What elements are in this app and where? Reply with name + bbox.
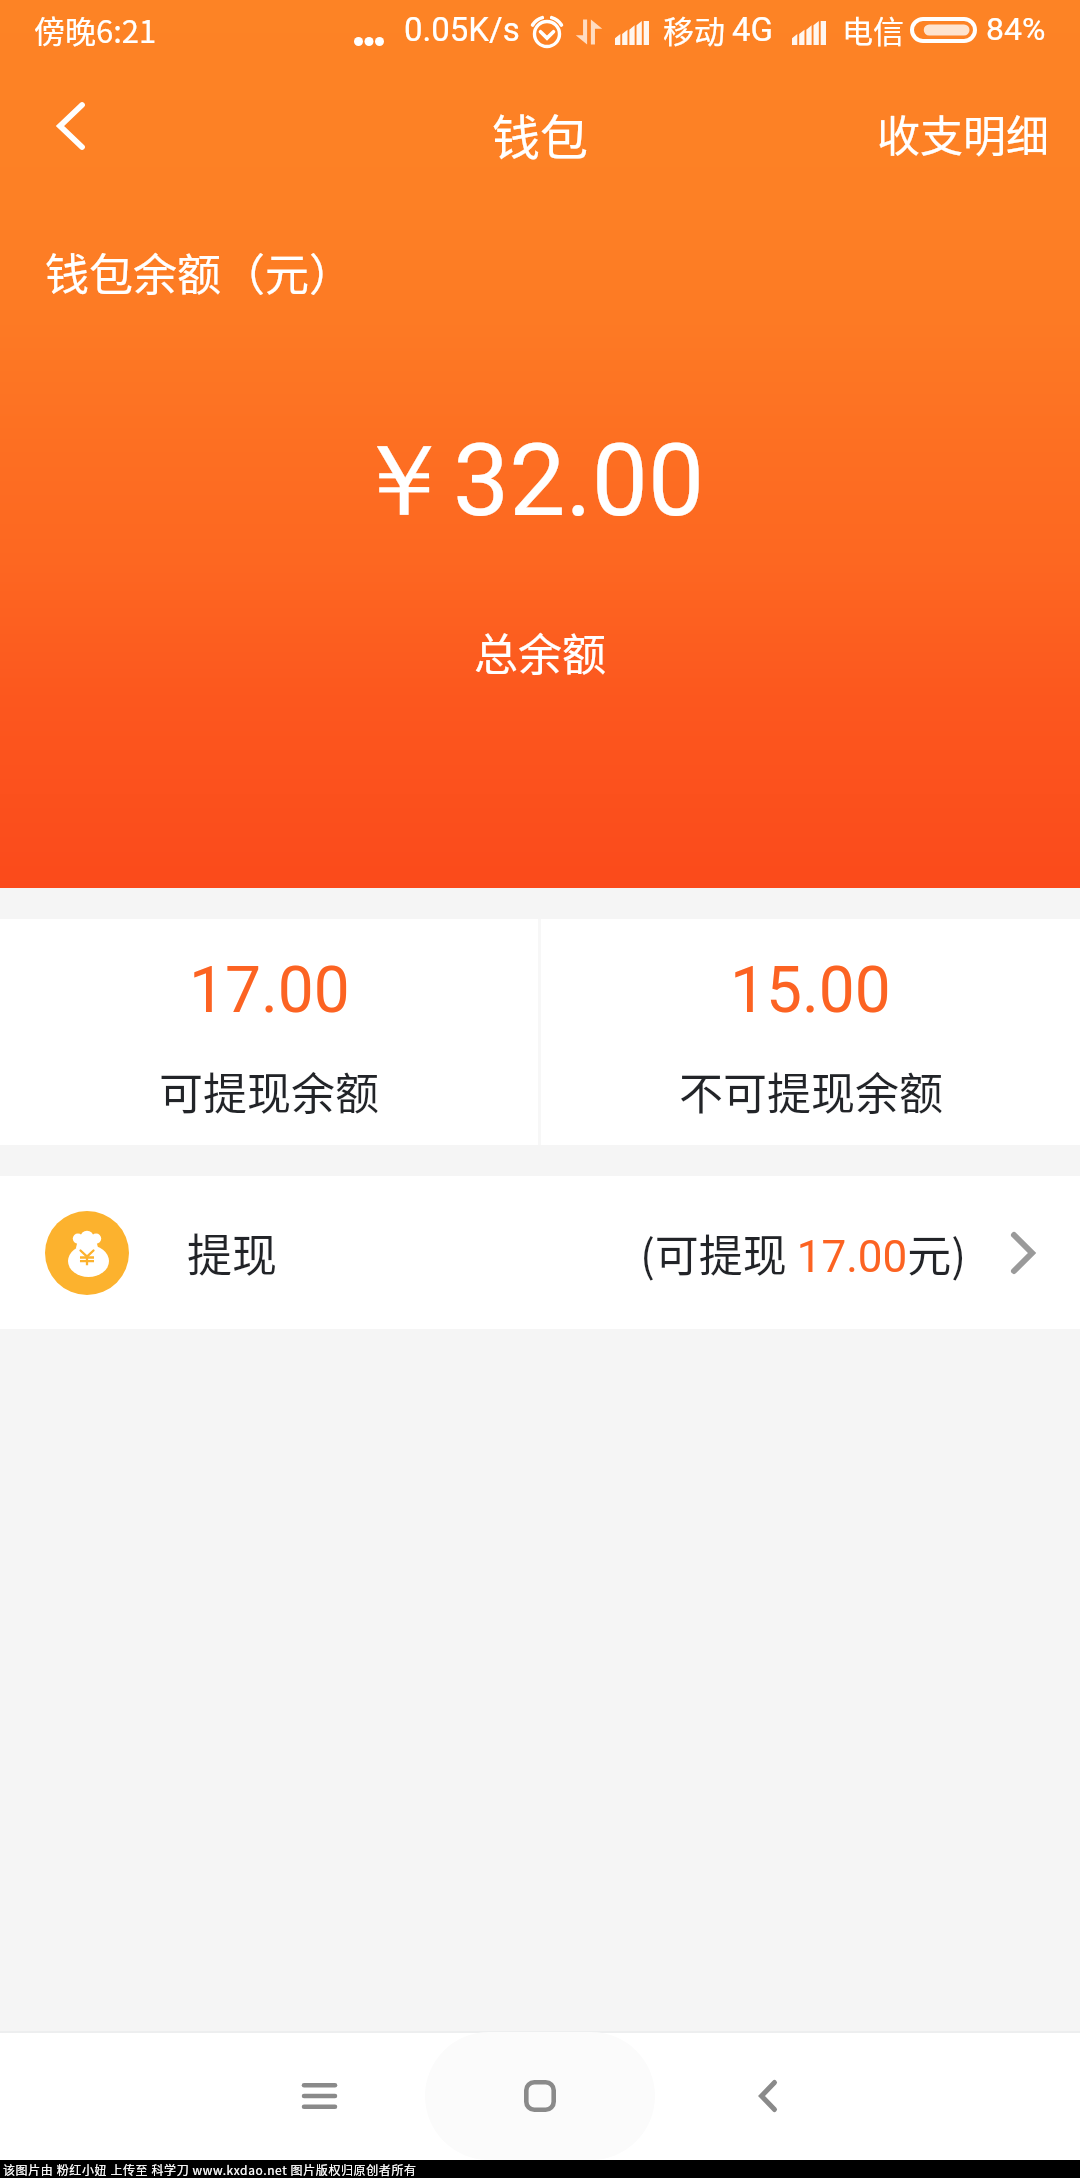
staticText: 提现 [187,1220,278,1285]
staticText: 收支明细 [877,102,1049,164]
button[interactable]: 收支明细 [846,60,1080,212]
button[interactable]: Back [713,2041,823,2151]
staticText: 电信 [842,7,904,52]
staticText: 可提现余额 [159,1059,379,1123]
button[interactable]: Back [0,60,120,212]
staticText: 84% [986,10,1046,48]
staticText: 总余额 [474,620,606,684]
button[interactable]: 17.00 [0,919,538,1145]
button[interactable]: 15.00 [541,919,1080,1145]
staticText: ￥32.00 [353,419,705,545]
button[interactable]: 提现 [0,1176,1080,1329]
staticText: 移动 [663,7,725,52]
staticText: 不可提现余额 [679,1059,943,1123]
staticText: 0.05K/s [404,10,520,49]
staticText: 傍晚6:21 [34,7,157,52]
staticText: 钱包余额（元） [45,240,353,304]
staticText: (可提现 17.00元) [640,1221,967,1285]
button[interactable]: Home [485,2041,595,2151]
staticText: 该图片由 粉红小妞 上传至 科学刀 www.kxdao.net 图片版权归原创者… [3,2161,417,2178]
staticText: 15.00 [730,953,891,1028]
staticText: 4G [732,10,774,49]
staticText: 钱包 [492,99,589,169]
staticText: 17.00 [189,953,350,1028]
button[interactable]: Menu [264,2041,374,2151]
